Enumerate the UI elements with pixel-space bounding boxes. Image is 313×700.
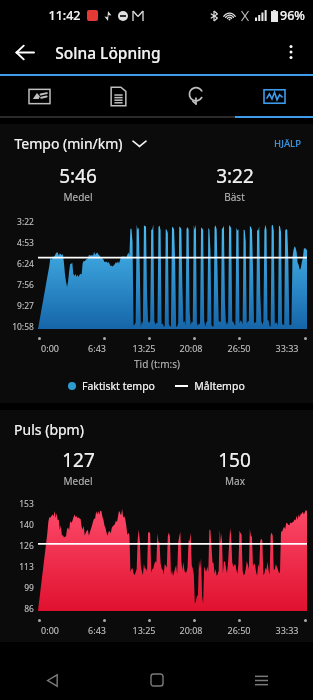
staticText: Puls (bpm)	[14, 420, 84, 439]
staticText: 33:33	[275, 342, 299, 354]
staticText: 99	[24, 582, 34, 594]
staticText: Måltempo	[194, 379, 245, 393]
staticText: 3:22	[216, 163, 254, 189]
staticText: Solna Löpning	[55, 42, 161, 63]
staticText: 127	[62, 447, 95, 473]
staticText: 5:46	[59, 163, 97, 189]
staticText: 26:50	[227, 624, 251, 636]
staticText: Medel	[63, 190, 93, 204]
staticText: 153	[19, 498, 34, 510]
button[interactable]: Laps	[157, 76, 235, 116]
staticText: 6:43	[88, 342, 106, 354]
button[interactable]: HJÄLP	[274, 137, 301, 150]
staticText: 20:08	[179, 342, 203, 354]
staticText: 113	[19, 561, 34, 573]
staticText: 6:24	[17, 258, 34, 270]
staticText: 26:50	[227, 342, 251, 354]
button[interactable]: More options	[273, 34, 309, 70]
button[interactable]: Home	[105, 660, 209, 700]
staticText: 0:00	[41, 624, 59, 636]
button[interactable]: Back	[6, 34, 42, 70]
staticText: 6:43	[88, 624, 106, 636]
staticText: 0:00	[41, 342, 59, 354]
staticText: Faktiskt tempo	[82, 379, 155, 393]
button[interactable]: Charts	[235, 76, 313, 116]
staticText: 9:27	[17, 300, 34, 312]
staticText: Max	[225, 474, 245, 488]
staticText: Bäst	[224, 190, 245, 204]
staticText: 86	[24, 603, 34, 615]
staticText: 4:53	[17, 237, 34, 249]
staticText: 7:56	[17, 279, 34, 291]
staticText: 11:42	[48, 7, 81, 24]
staticText: Tid (t:m:s)	[134, 357, 180, 371]
staticText: 140	[19, 519, 34, 531]
button[interactable]: Tempo (min/km)	[14, 134, 146, 153]
staticText: 33:33	[275, 624, 299, 636]
button[interactable]: Back	[0, 660, 105, 700]
staticText: 96%	[280, 7, 305, 24]
button[interactable]: Recents	[209, 660, 313, 700]
staticText: HJÄLP	[274, 137, 301, 150]
button[interactable]: Details	[79, 76, 157, 116]
staticText: Medel	[63, 474, 93, 488]
staticText: Tempo (min/km)	[14, 134, 123, 153]
staticText: 20:08	[179, 624, 203, 636]
staticText: 3:22	[17, 216, 34, 228]
staticText: 13:25	[132, 342, 156, 354]
staticText: 126	[19, 540, 34, 552]
staticText: 10:58	[12, 321, 34, 333]
button[interactable]: Map	[0, 76, 79, 116]
staticText: 150	[218, 447, 251, 473]
staticText: 13:25	[132, 624, 156, 636]
